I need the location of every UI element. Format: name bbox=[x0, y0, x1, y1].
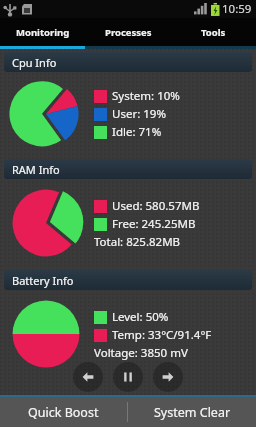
button[interactable]: Monitoring bbox=[0, 18, 86, 46]
staticText: 10:59 bbox=[222, 1, 252, 17]
button[interactable]: Back bbox=[73, 362, 103, 392]
button[interactable]: Processes bbox=[86, 18, 171, 46]
button[interactable]: Quick Boost bbox=[0, 397, 127, 427]
staticText: Monitoring bbox=[16, 26, 70, 39]
button[interactable]: Forward bbox=[153, 362, 183, 392]
staticText: Free: 245.25MB bbox=[112, 216, 196, 232]
staticText: System Clear bbox=[154, 404, 231, 421]
button[interactable]: Pause bbox=[113, 362, 143, 392]
button[interactable]: Tools bbox=[171, 18, 256, 46]
staticText: Temp: 33°C/91.4°F bbox=[112, 327, 212, 343]
staticText: User: 19% bbox=[112, 106, 166, 122]
staticText: Battery Info bbox=[12, 273, 74, 288]
staticText: Tools bbox=[201, 26, 226, 39]
staticText: Idle: 71% bbox=[112, 124, 162, 140]
staticText: System: 10% bbox=[112, 88, 180, 104]
staticText: Cpu Info bbox=[12, 55, 57, 70]
button[interactable]: System Clear bbox=[128, 397, 256, 427]
staticText: Processes bbox=[105, 26, 152, 39]
staticText: Level: 50% bbox=[112, 309, 169, 325]
staticText: RAM Info bbox=[12, 162, 60, 177]
staticText: Used: 580.57MB bbox=[112, 198, 200, 214]
staticText: Total: 825.82MB bbox=[94, 234, 181, 250]
staticText: Quick Boost bbox=[28, 404, 99, 421]
staticText: Voltage: 3850 mV bbox=[94, 345, 188, 361]
